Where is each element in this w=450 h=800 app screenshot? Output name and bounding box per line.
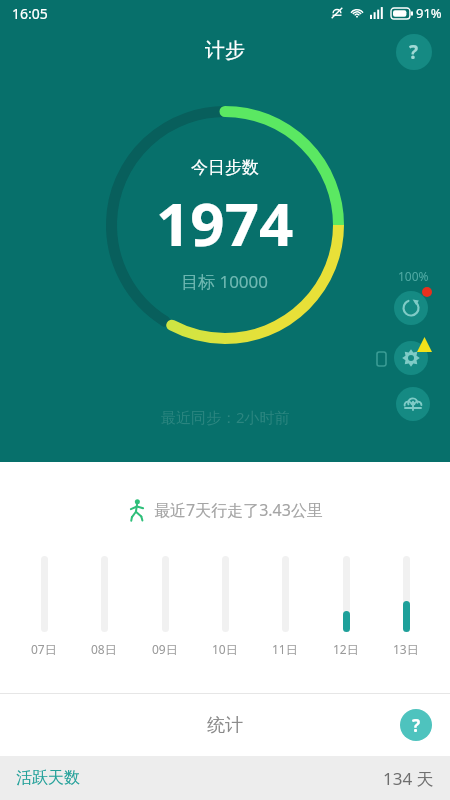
staticText: 100% bbox=[398, 268, 429, 284]
staticText: 13日 bbox=[393, 641, 419, 656]
staticText: 目标 10000 bbox=[181, 270, 269, 293]
staticText: 91% bbox=[416, 4, 442, 22]
staticText: 活跃天数 bbox=[16, 768, 80, 788]
button[interactable]: 统计 bbox=[0, 694, 450, 756]
staticText: 统计 bbox=[207, 714, 243, 737]
staticText: 08日 bbox=[91, 641, 117, 656]
staticText: 134 天 bbox=[383, 767, 434, 790]
staticText: ? bbox=[409, 39, 419, 65]
staticText: 计步 bbox=[205, 38, 245, 63]
button[interactable]: Help bbox=[396, 34, 432, 70]
staticText: ? bbox=[412, 714, 421, 737]
staticText: 09日 bbox=[152, 641, 178, 656]
button[interactable]: Upload bbox=[396, 387, 430, 421]
staticText: 12日 bbox=[333, 641, 359, 656]
staticText: 10日 bbox=[212, 641, 238, 656]
staticText: 最近7天行走了3.43公里 bbox=[154, 499, 323, 521]
button[interactable]: Settings bbox=[394, 337, 432, 375]
staticText: 11日 bbox=[272, 641, 298, 656]
button[interactable]: 活跃天数 bbox=[0, 756, 450, 800]
staticText: 07日 bbox=[31, 641, 57, 656]
staticText: 今日步数 bbox=[191, 157, 259, 178]
staticText: 最近同步：2小时前 bbox=[161, 407, 290, 427]
button[interactable]: Sync bbox=[394, 287, 432, 325]
staticText: 16:05 bbox=[12, 4, 48, 23]
button[interactable]: Statistics help bbox=[400, 709, 432, 741]
staticText: 1974 bbox=[156, 182, 294, 264]
